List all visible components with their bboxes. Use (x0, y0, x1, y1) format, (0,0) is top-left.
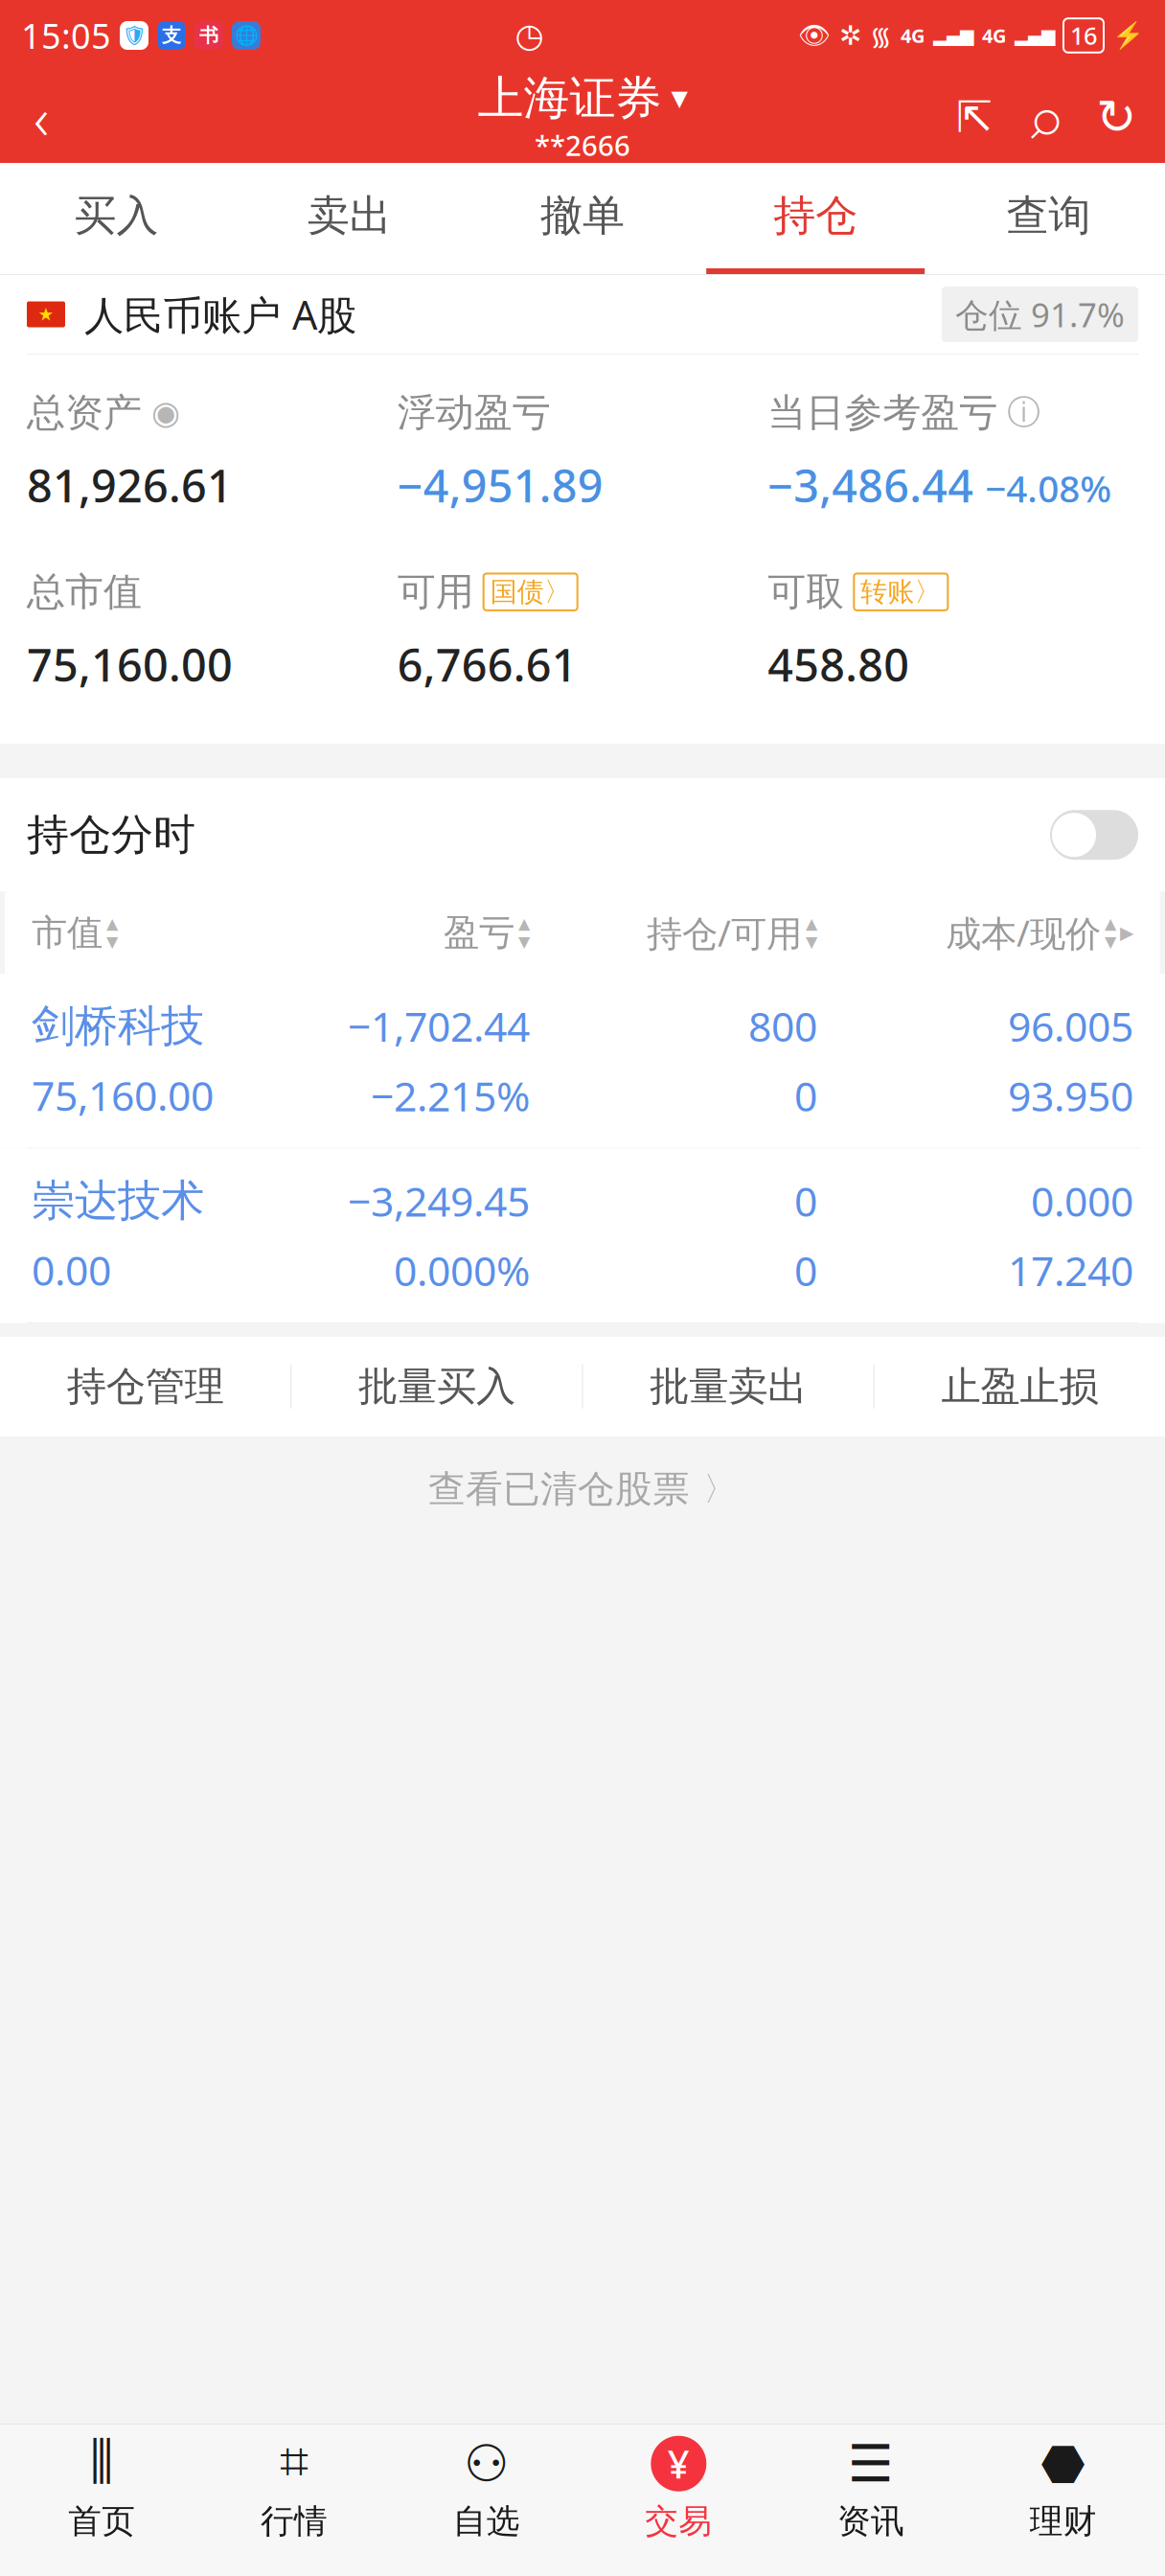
staticText: ↻ (1096, 89, 1136, 144)
staticText: ✲ (839, 20, 861, 51)
staticText: ⚇ (463, 2435, 509, 2493)
staticText: 持仓 (773, 190, 858, 241)
staticText: 浮动盈亏 (397, 389, 551, 436)
staticText: ▼ (106, 933, 118, 951)
button[interactable]: 上海证券 (468, 70, 697, 164)
staticText: 交易 (645, 2501, 712, 2542)
staticText: ‹ (34, 78, 49, 156)
staticText: ☰ (848, 2435, 894, 2493)
staticText: 0 (794, 1173, 817, 1228)
button[interactable]: ⌗ (198, 2427, 390, 2550)
staticText: 止盈止损 (941, 1362, 1098, 1411)
staticText: 买入 (74, 190, 159, 241)
staticText: ▼ (518, 933, 530, 951)
staticText: ⫼ (90, 2439, 114, 2489)
staticText: 查看已清仓股票 (428, 1466, 690, 1512)
button[interactable]: 持仓分时 toggle (1050, 810, 1138, 860)
button[interactable]: 止盈止损 (875, 1337, 1165, 1436)
staticText: −4,951.89 (397, 455, 603, 515)
staticText: 持仓分时 (27, 809, 195, 861)
staticText: 4G (982, 23, 1006, 48)
staticText: 当日参考盈亏 (768, 389, 998, 436)
staticText: 支 (162, 24, 181, 47)
staticText: 75,160.00 (32, 1068, 214, 1122)
staticText: 0 (794, 1068, 817, 1123)
staticText: −3,249.45 (348, 1173, 530, 1228)
staticText: −1,702.44 (348, 999, 530, 1053)
button[interactable]: 卖出 (233, 163, 466, 274)
button[interactable]: 批量卖出 (583, 1337, 873, 1436)
button[interactable]: 查看已清仓股票 (0, 1436, 1165, 1542)
button[interactable]: 崇达技术 (0, 1149, 1165, 1323)
button[interactable]: Refresh (1081, 71, 1152, 163)
staticText: 自选 (453, 2501, 520, 2542)
staticText: 人民币账户 A股 (84, 288, 356, 341)
staticText: 国债〉 (490, 575, 571, 608)
staticText: 撤单 (540, 190, 625, 241)
staticText: 81,926.61 (27, 455, 233, 515)
staticText: 0.00 (32, 1243, 111, 1297)
button[interactable]: ⚇ (390, 2427, 582, 2550)
staticText: ▂▄▆ (1015, 25, 1055, 46)
button[interactable]: ⬣ (967, 2427, 1159, 2550)
staticText: 查询 (1006, 190, 1091, 241)
staticText: 行情 (261, 2501, 328, 2542)
button[interactable]: ⫼ (6, 2427, 198, 2550)
staticText: ▲ (1105, 915, 1116, 932)
button[interactable]: 持仓 (699, 163, 932, 274)
button[interactable]: 剑桥科技 (0, 974, 1165, 1149)
button[interactable]: 查询 (932, 163, 1165, 274)
staticText: 800 (748, 999, 817, 1053)
staticText: 上海证券 (478, 70, 662, 126)
staticText: 资讯 (837, 2501, 904, 2542)
staticText: 93.950 (1008, 1068, 1133, 1123)
staticText: ▲ (106, 915, 118, 932)
staticText: ▼ (806, 933, 817, 951)
staticText: 0.000% (394, 1243, 530, 1297)
button[interactable]: 批量买入 (291, 1337, 582, 1436)
staticText: 剑桥科技 (32, 999, 204, 1053)
staticText: 可用 (397, 568, 474, 615)
staticText: 首页 (68, 2501, 135, 2542)
staticText: ᯾ (870, 18, 892, 52)
button[interactable]: 撤单 (466, 163, 699, 274)
button[interactable]: Search (1010, 71, 1081, 163)
staticText: 盈亏 (444, 911, 514, 955)
button[interactable]: 买入 (0, 163, 233, 274)
button[interactable]: Back (0, 71, 82, 163)
staticText: −3,486.44 (768, 455, 974, 515)
button[interactable]: ☰ (775, 2427, 967, 2550)
staticText: 0.000 (1031, 1173, 1133, 1228)
staticText: ▼ (671, 86, 687, 111)
staticText: ▲ (806, 915, 817, 932)
staticText: 持仓/可用 (647, 909, 802, 956)
staticText: 仓位 91.7% (955, 292, 1125, 336)
staticText: ▼ (1105, 933, 1116, 951)
staticText: 卖出 (307, 190, 392, 241)
staticText: 崇达技术 (32, 1174, 204, 1227)
staticText: 总市值 (27, 568, 142, 615)
staticText: ⌕ (1028, 63, 1062, 170)
staticText: 17.240 (1008, 1243, 1133, 1297)
staticText: 总资产 (27, 389, 142, 436)
staticText: 转账〉 (861, 575, 941, 608)
staticText: ⬣ (1041, 2435, 1086, 2493)
staticText: 16 (1070, 19, 1097, 52)
staticText: 市值 (32, 911, 103, 955)
staticText: 0 (794, 1243, 817, 1297)
staticText: ⓘ (1007, 392, 1041, 433)
staticText: 🛡 (122, 25, 146, 46)
button[interactable]: 持仓管理 (0, 1337, 290, 1436)
staticText: 75,160.00 (27, 635, 233, 694)
staticText: ◉ (151, 394, 180, 431)
button[interactable]: Share (939, 71, 1010, 163)
staticText: ▂▄▆ (933, 25, 973, 46)
staticText: 可取 (768, 568, 844, 615)
staticText: ★ (38, 304, 54, 324)
staticText: 书 (199, 24, 218, 47)
staticText: ▶ (1120, 922, 1133, 943)
staticText: −2.215% (371, 1068, 530, 1123)
button[interactable]: ¥ (582, 2427, 775, 2550)
staticText: 批量买入 (358, 1362, 515, 1411)
staticText: ⇱ (956, 92, 993, 142)
